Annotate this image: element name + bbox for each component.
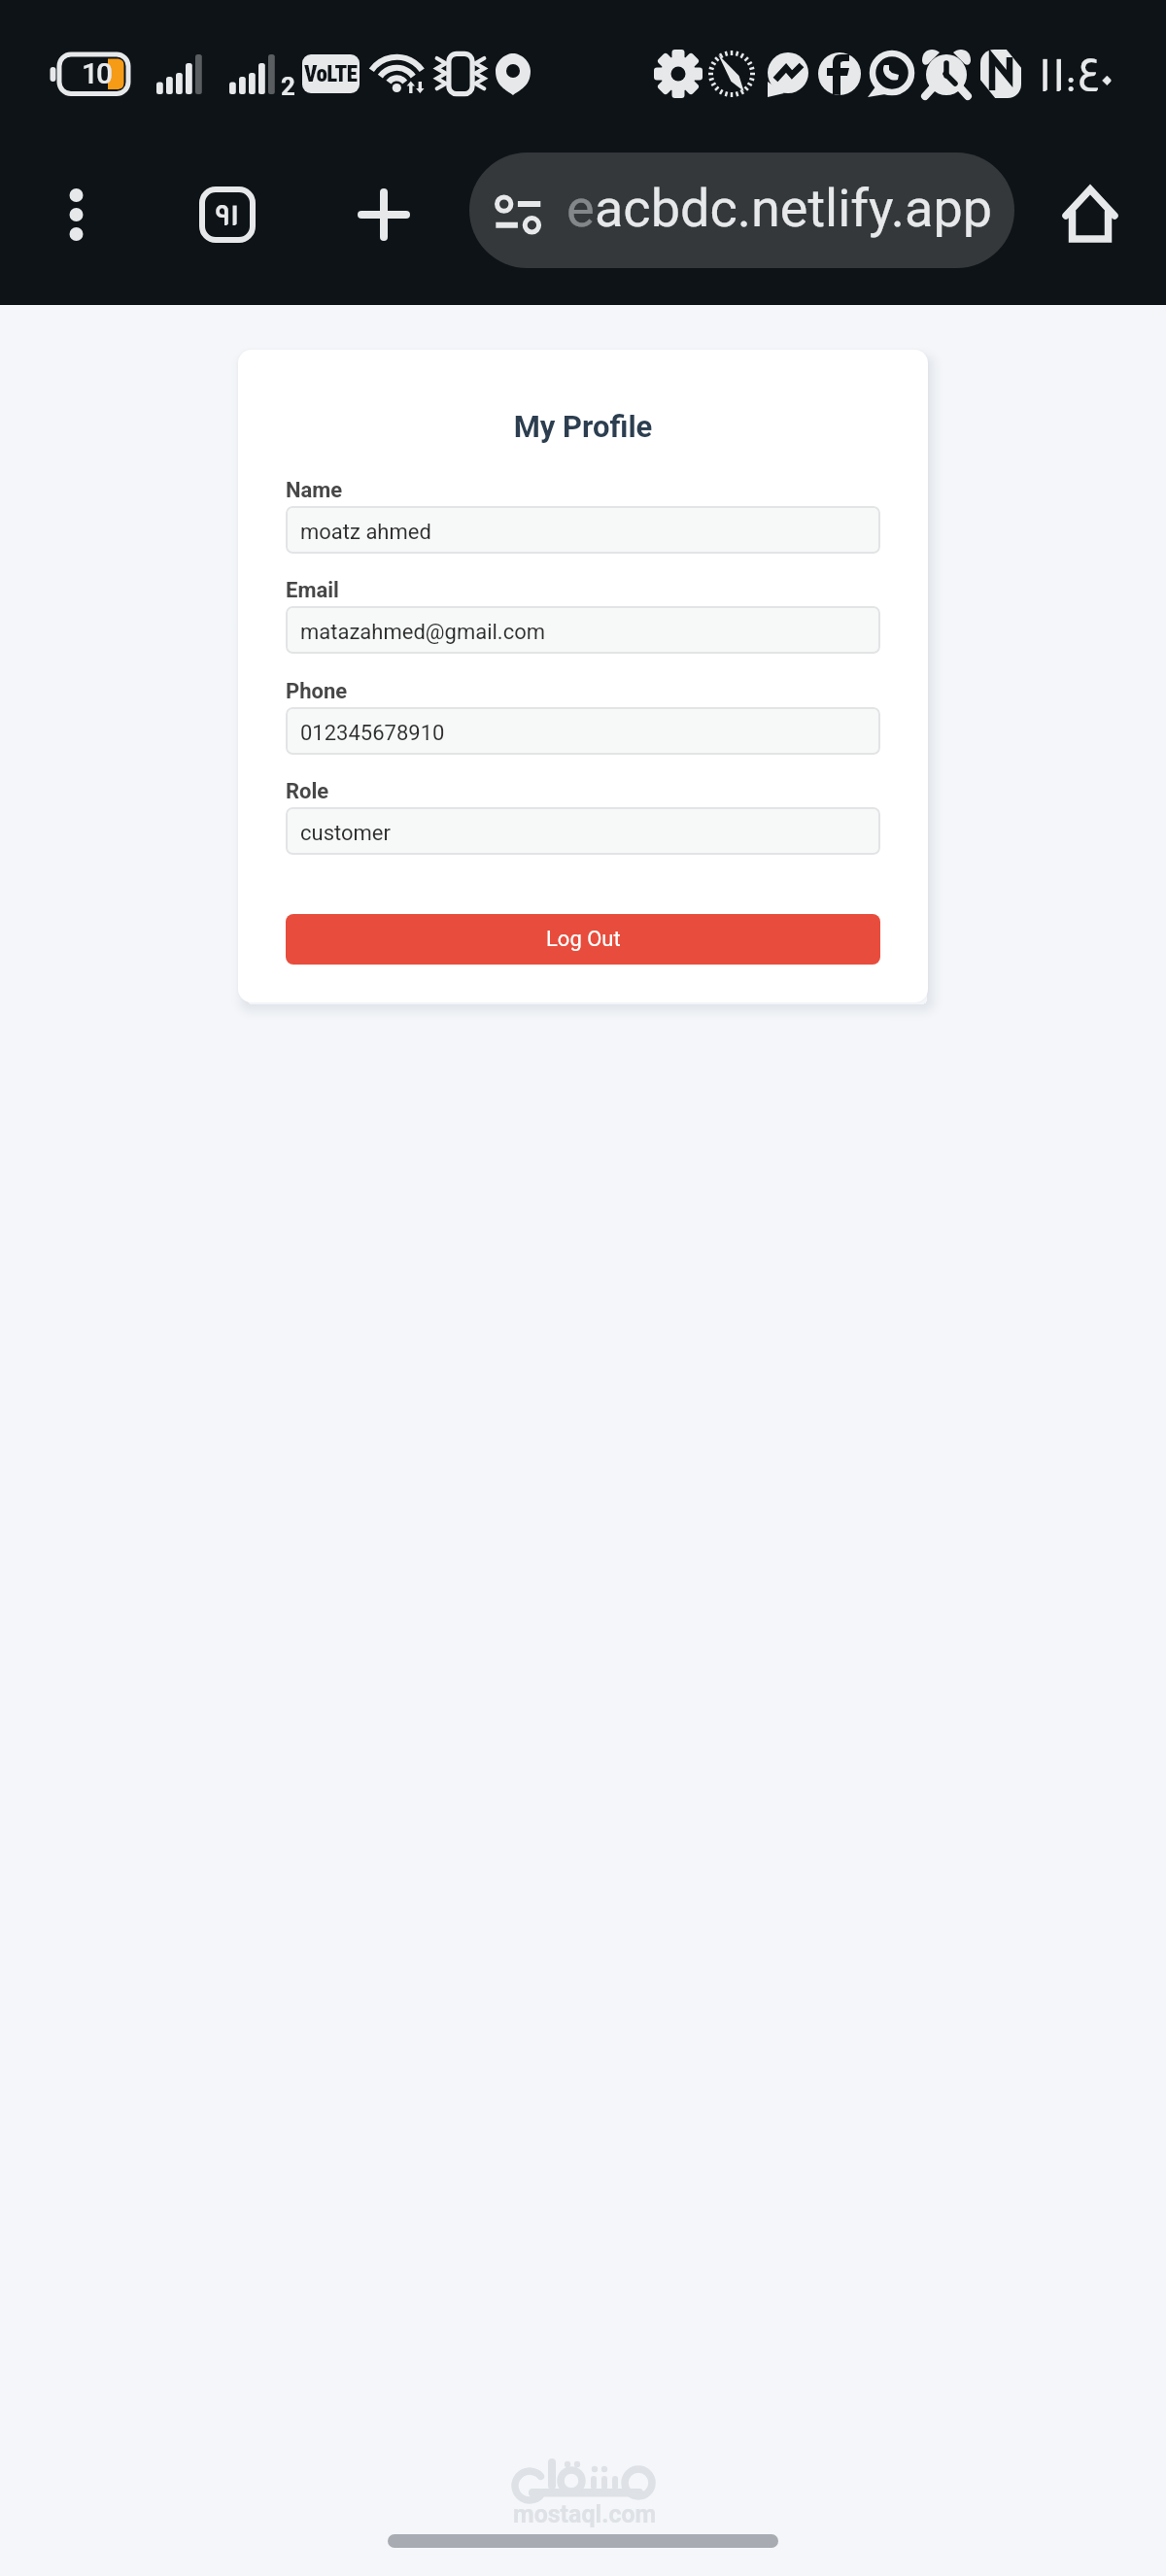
staticText: acbdc.netlify.app	[595, 178, 993, 239]
button[interactable]: More options	[47, 183, 111, 247]
staticText: 2	[281, 72, 295, 101]
staticText: VoLTE	[304, 61, 358, 87]
button[interactable]: e	[469, 153, 1014, 268]
staticText: Role	[286, 779, 329, 804]
staticText: moatz ahmed	[300, 520, 431, 545]
staticText: Phone	[286, 679, 348, 704]
staticText: Name	[286, 478, 343, 503]
staticText: Log Out	[546, 927, 621, 952]
button[interactable]: Log Out	[286, 914, 880, 965]
staticText: matazahmed@gmail.com	[300, 620, 546, 645]
staticText: ٩١	[215, 199, 240, 231]
button[interactable]: New tab	[352, 183, 416, 247]
staticText: e	[566, 178, 595, 239]
staticText: customer	[300, 821, 391, 846]
staticText: Email	[286, 578, 339, 603]
staticText: 10	[82, 56, 112, 90]
button[interactable]: Home	[1055, 180, 1125, 250]
staticText: mostaql.com	[513, 2500, 657, 2528]
staticText: ١١:٤٠	[1039, 49, 1115, 102]
button[interactable]: Tabs	[194, 182, 260, 248]
staticText: My Profile	[238, 409, 928, 444]
staticText: 012345678910	[300, 721, 445, 746]
